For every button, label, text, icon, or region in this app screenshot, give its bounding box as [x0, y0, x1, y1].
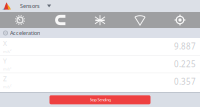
staticText: X: [3, 39, 7, 48]
button[interactable]: Acceleration: [0, 28, 200, 38]
button[interactable]: Magnetic Field: [40, 12, 80, 28]
staticText: 0.357: [174, 76, 196, 87]
staticText: Acceleration: [10, 29, 40, 37]
staticText: Stop Sending: [89, 97, 110, 102]
button[interactable]: Stop Sending: [49, 95, 150, 104]
button[interactable]: Acceleration: [0, 12, 40, 28]
staticText: Y: [3, 56, 7, 65]
staticText: m/s²: [3, 84, 11, 89]
button[interactable]: Angular Velocity: [80, 12, 120, 28]
button[interactable]: Orientation: [120, 12, 160, 28]
staticText: Sensors: [20, 2, 40, 10]
staticText: 0.225: [174, 59, 196, 69]
staticText: 9.887: [174, 41, 196, 52]
staticText: m/s²: [3, 49, 11, 54]
button[interactable]: Position: [160, 12, 200, 28]
staticText: Z: [3, 74, 7, 83]
staticText: m/s²: [3, 66, 11, 72]
